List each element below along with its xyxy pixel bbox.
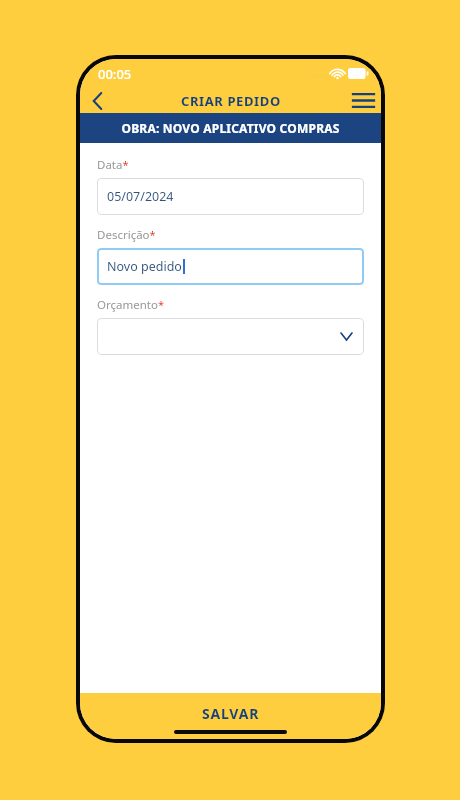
button[interactable]: SALVAR [80, 693, 381, 739]
staticText: Orçamento* [97, 297, 164, 313]
staticText: Novo pedido [107, 258, 182, 275]
staticText: 00:05 [98, 65, 132, 83]
button[interactable]: Orçamento dropdown [97, 318, 364, 355]
staticText: SALVAR [202, 704, 260, 723]
staticText: Data* [97, 157, 129, 173]
staticText: Descrição* [97, 227, 156, 243]
staticText: OBRA: NOVO APLICATIVO COMPRAS [121, 120, 340, 136]
button[interactable]: Back [80, 88, 114, 113]
button[interactable]: 05/07/2024 [97, 178, 364, 215]
button[interactable]: Novo pedido [97, 248, 364, 285]
staticText: CRIAR PEDIDO [181, 92, 281, 110]
staticText: 05/07/2024 [107, 188, 174, 205]
button[interactable]: Menu [345, 88, 381, 113]
